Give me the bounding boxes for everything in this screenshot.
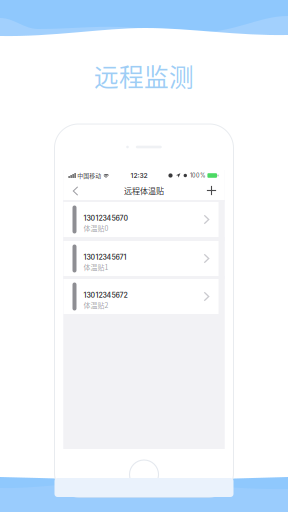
- staticText: 13012345670: [83, 214, 128, 222]
- staticText: 远程体温贴: [124, 185, 164, 196]
- staticText: 12:32: [131, 171, 148, 180]
- button[interactable]: Add device: [200, 182, 224, 199]
- button[interactable]: 13012345672: [63, 279, 224, 314]
- button[interactable]: Back: [63, 182, 84, 199]
- staticText: 13012345672: [83, 291, 127, 299]
- button[interactable]: 13012345671: [63, 241, 224, 276]
- staticText: 100%: [190, 172, 205, 179]
- staticText: 中国移动: [77, 171, 101, 180]
- button[interactable]: 13012345670: [63, 202, 224, 237]
- staticText: 体温贴2: [83, 300, 108, 310]
- staticText: 体温贴1: [83, 262, 108, 272]
- staticText: 13012345671: [83, 253, 126, 261]
- staticText: 远程监测: [94, 58, 194, 94]
- staticText: 体温贴0: [83, 223, 108, 233]
